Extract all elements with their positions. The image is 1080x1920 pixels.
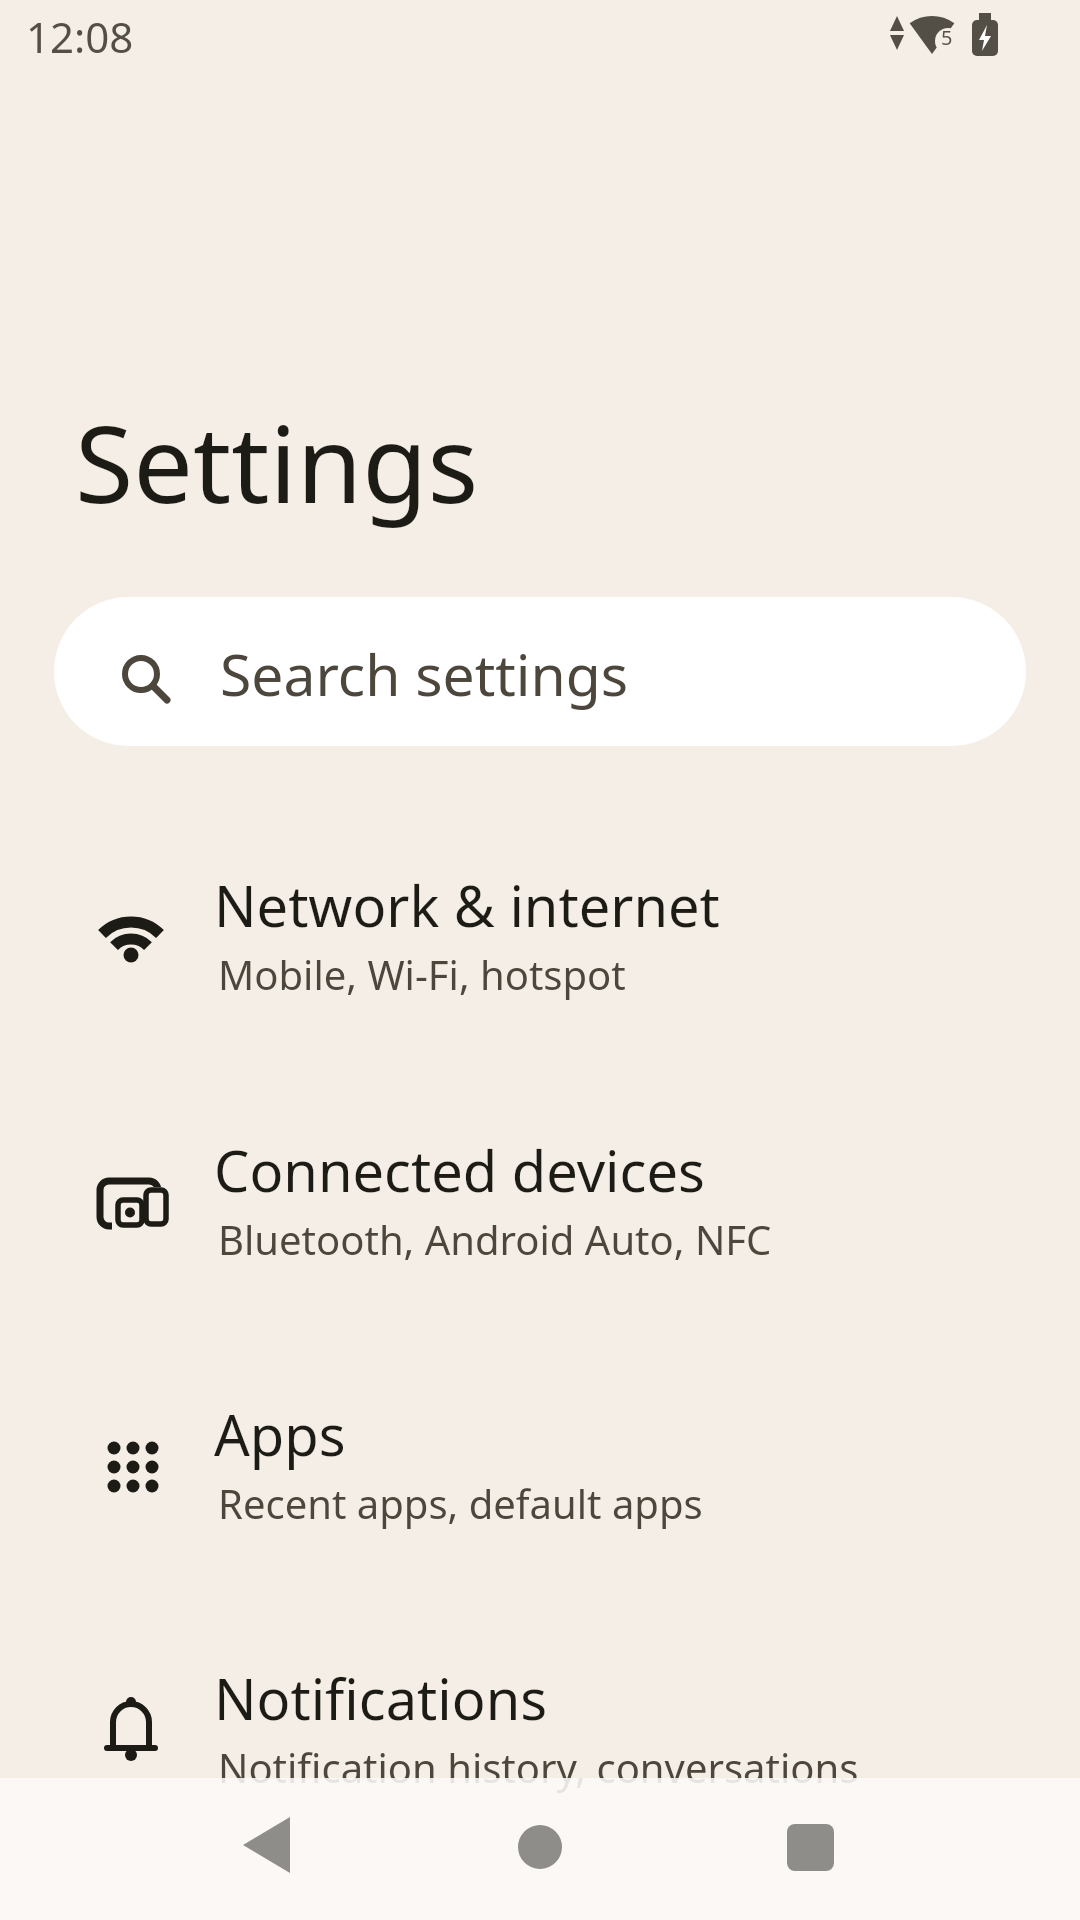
staticText: Network & internet <box>214 867 720 943</box>
button[interactable]: Network & internet <box>0 797 1080 1060</box>
staticText: Bluetooth, Android Auto, NFC <box>218 1212 772 1266</box>
staticText: Mobile, Wi-Fi, hotspot <box>218 947 626 1001</box>
staticText: Settings <box>75 390 479 534</box>
staticText: Search settings <box>220 635 629 713</box>
staticText: Notifications <box>214 1660 548 1736</box>
staticText: Notification history, conversations <box>218 1740 859 1794</box>
staticText: 12:08 <box>26 8 134 65</box>
button[interactable]: Apps <box>0 1326 1080 1589</box>
staticText: Apps <box>214 1396 346 1472</box>
button[interactable]: Search settings <box>54 597 1026 746</box>
button[interactable]: Notifications <box>0 1590 1080 1853</box>
staticText: Recent apps, default apps <box>218 1476 703 1530</box>
staticText: 5 <box>941 24 953 51</box>
button[interactable] <box>765 1802 855 1892</box>
button[interactable] <box>223 1807 313 1887</box>
button[interactable] <box>495 1802 585 1892</box>
staticText: Connected devices <box>214 1132 705 1208</box>
button[interactable]: Connected devices <box>0 1062 1080 1325</box>
